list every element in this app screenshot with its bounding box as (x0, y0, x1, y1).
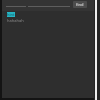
button[interactable]: hahahah (7, 18, 24, 23)
staticText: find (76, 2, 84, 7)
staticText: hint (7, 12, 15, 17)
button[interactable]: Run (73, 1, 87, 8)
button[interactable] (6, 0, 26, 9)
staticText: hahahah (7, 18, 24, 23)
button[interactable] (28, 0, 70, 9)
button[interactable]: hint (7, 12, 15, 17)
